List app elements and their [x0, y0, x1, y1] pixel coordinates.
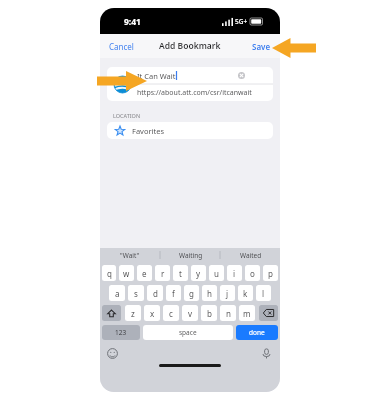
button[interactable]: done	[236, 325, 278, 340]
staticText: w	[123, 268, 130, 279]
staticText: 9:41	[124, 16, 141, 28]
staticText: 5G+	[235, 17, 248, 26]
button[interactable]: b	[201, 305, 217, 321]
button[interactable]: n	[220, 305, 236, 321]
button[interactable]: i	[227, 265, 242, 281]
staticText: q	[107, 268, 112, 279]
button[interactable]: c	[163, 305, 179, 321]
staticText: https://about.att.com/csr/itcanwait	[137, 88, 252, 98]
button[interactable]: Dictation	[261, 348, 272, 359]
button[interactable]: s	[128, 285, 144, 301]
staticText: p	[268, 268, 273, 279]
button[interactable]: r	[155, 265, 170, 281]
button[interactable]: space	[143, 325, 233, 340]
staticText: Cancel	[109, 41, 134, 52]
button[interactable]: e	[137, 265, 152, 281]
staticText: Waited	[240, 251, 262, 260]
button[interactable]: Clear text	[238, 72, 245, 79]
button[interactable]: Favorites	[107, 122, 273, 139]
button[interactable]: Waiting	[161, 248, 220, 262]
staticText: f	[172, 288, 175, 299]
button[interactable]: d	[147, 285, 163, 301]
button[interactable]: y	[191, 265, 206, 281]
button[interactable]: Emoji keyboard	[107, 348, 118, 359]
staticText: j	[226, 288, 229, 299]
staticText: Save	[252, 41, 271, 52]
button[interactable]: x	[144, 305, 160, 321]
button[interactable]: p	[263, 265, 278, 281]
staticText: b	[207, 308, 212, 319]
staticText: d	[153, 288, 158, 299]
button[interactable]: Save	[243, 37, 280, 56]
button[interactable]: Backspace	[259, 305, 278, 321]
button[interactable]: Cancel	[100, 37, 143, 56]
staticText: 123	[115, 328, 127, 337]
staticText: o	[250, 268, 255, 279]
button[interactable]: q	[102, 265, 116, 281]
button[interactable]: Waited	[221, 248, 280, 262]
button[interactable]: h	[202, 285, 217, 301]
button[interactable]: f	[166, 285, 181, 301]
staticText: h	[207, 288, 212, 299]
staticText: u	[214, 268, 219, 279]
staticText: v	[188, 308, 193, 319]
staticText: a	[115, 288, 120, 299]
staticText: e	[142, 268, 147, 279]
staticText: It Can Wait	[137, 71, 176, 81]
staticText: LOCATION	[113, 112, 141, 119]
button[interactable]: o	[245, 265, 260, 281]
staticText: y	[196, 268, 201, 279]
staticText: s	[134, 288, 138, 299]
button[interactable]: v	[182, 305, 198, 321]
button[interactable]: l	[256, 285, 271, 301]
staticText: z	[131, 308, 135, 319]
staticText: Add Bookmark	[159, 40, 221, 52]
staticText: space	[179, 328, 197, 337]
staticText: done	[249, 328, 265, 337]
staticText: Favorites	[132, 126, 165, 136]
button[interactable]: k	[238, 285, 253, 301]
button[interactable]: It Can Wait	[107, 67, 273, 101]
staticText: "Wait"	[120, 251, 140, 260]
staticText: x	[150, 308, 155, 319]
staticText: l	[262, 288, 265, 299]
button[interactable]: g	[184, 285, 199, 301]
staticText: c	[169, 308, 173, 319]
button[interactable]: z	[125, 305, 141, 321]
button[interactable]: t	[173, 265, 188, 281]
button[interactable]: u	[209, 265, 224, 281]
staticText: n	[226, 308, 231, 319]
button[interactable]: 123	[102, 325, 140, 340]
button[interactable]: w	[119, 265, 134, 281]
button[interactable]: j	[220, 285, 235, 301]
button[interactable]: Shift	[102, 305, 121, 321]
staticText: t	[179, 268, 182, 279]
staticText: g	[189, 288, 194, 299]
button[interactable]: m	[239, 305, 255, 321]
staticText: r	[161, 268, 165, 279]
staticText: Waiting	[179, 251, 203, 260]
staticText: m	[243, 308, 251, 319]
staticText: k	[243, 288, 248, 299]
staticText: i	[233, 268, 236, 279]
button[interactable]: a	[109, 285, 125, 301]
button[interactable]: "Wait"	[100, 248, 160, 262]
